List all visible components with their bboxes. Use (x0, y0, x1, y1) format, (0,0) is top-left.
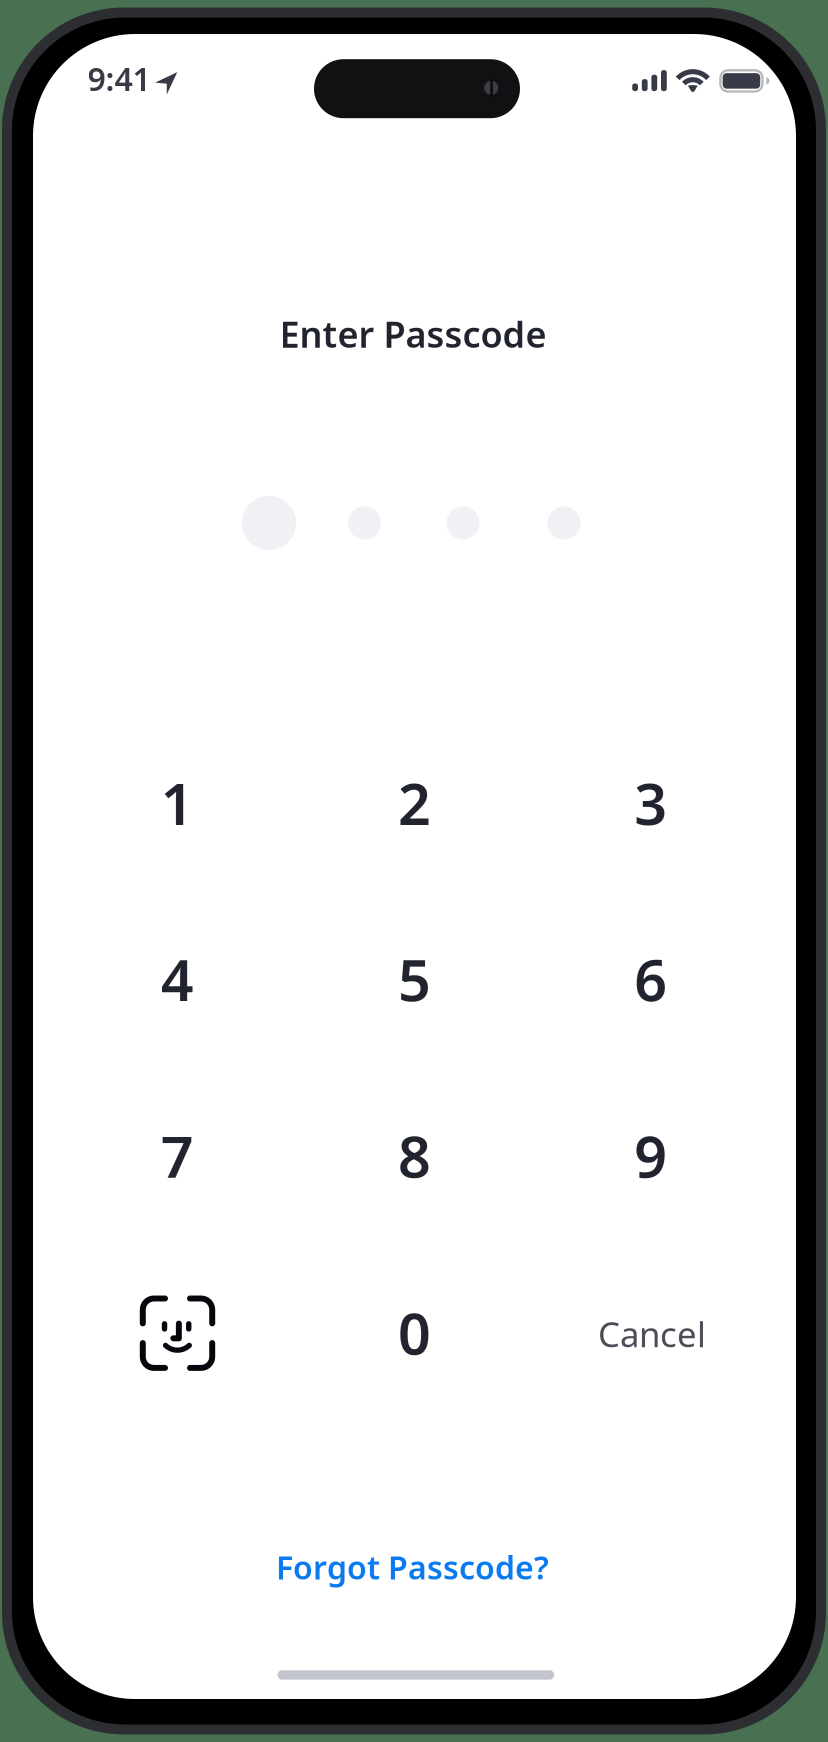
staticText: Enter Passcode (279, 310, 546, 358)
button[interactable]: Unlock with Face ID (93, 1267, 261, 1399)
button[interactable]: 0 (330, 1267, 498, 1399)
button[interactable]: 3 (567, 737, 735, 869)
staticText: 7 (161, 1117, 194, 1193)
button[interactable]: 9 (567, 1089, 735, 1221)
staticText: 1 (161, 765, 194, 841)
button[interactable]: Forgot Passcode? (247, 1529, 577, 1605)
button[interactable]: 8 (330, 1089, 498, 1221)
staticText: 2 (398, 765, 431, 841)
button[interactable]: 2 (330, 737, 498, 869)
button[interactable]: 1 (93, 737, 261, 869)
staticText: 6 (634, 941, 667, 1017)
staticText: 9:41 (88, 57, 151, 100)
button[interactable]: 7 (93, 1089, 261, 1221)
staticText: 3 (634, 765, 667, 841)
staticText: Cancel (598, 1311, 706, 1357)
staticText: 9 (634, 1117, 667, 1193)
staticText: 0 (398, 1294, 431, 1371)
button[interactable]: Cancel (568, 1268, 736, 1400)
button[interactable]: 5 (330, 913, 498, 1045)
staticText: Forgot Passcode? (276, 1546, 549, 1588)
staticText: 8 (398, 1117, 431, 1193)
button[interactable]: 4 (93, 913, 261, 1045)
staticText: 5 (398, 941, 431, 1017)
button[interactable]: 6 (567, 913, 735, 1045)
staticText: 4 (161, 941, 194, 1017)
